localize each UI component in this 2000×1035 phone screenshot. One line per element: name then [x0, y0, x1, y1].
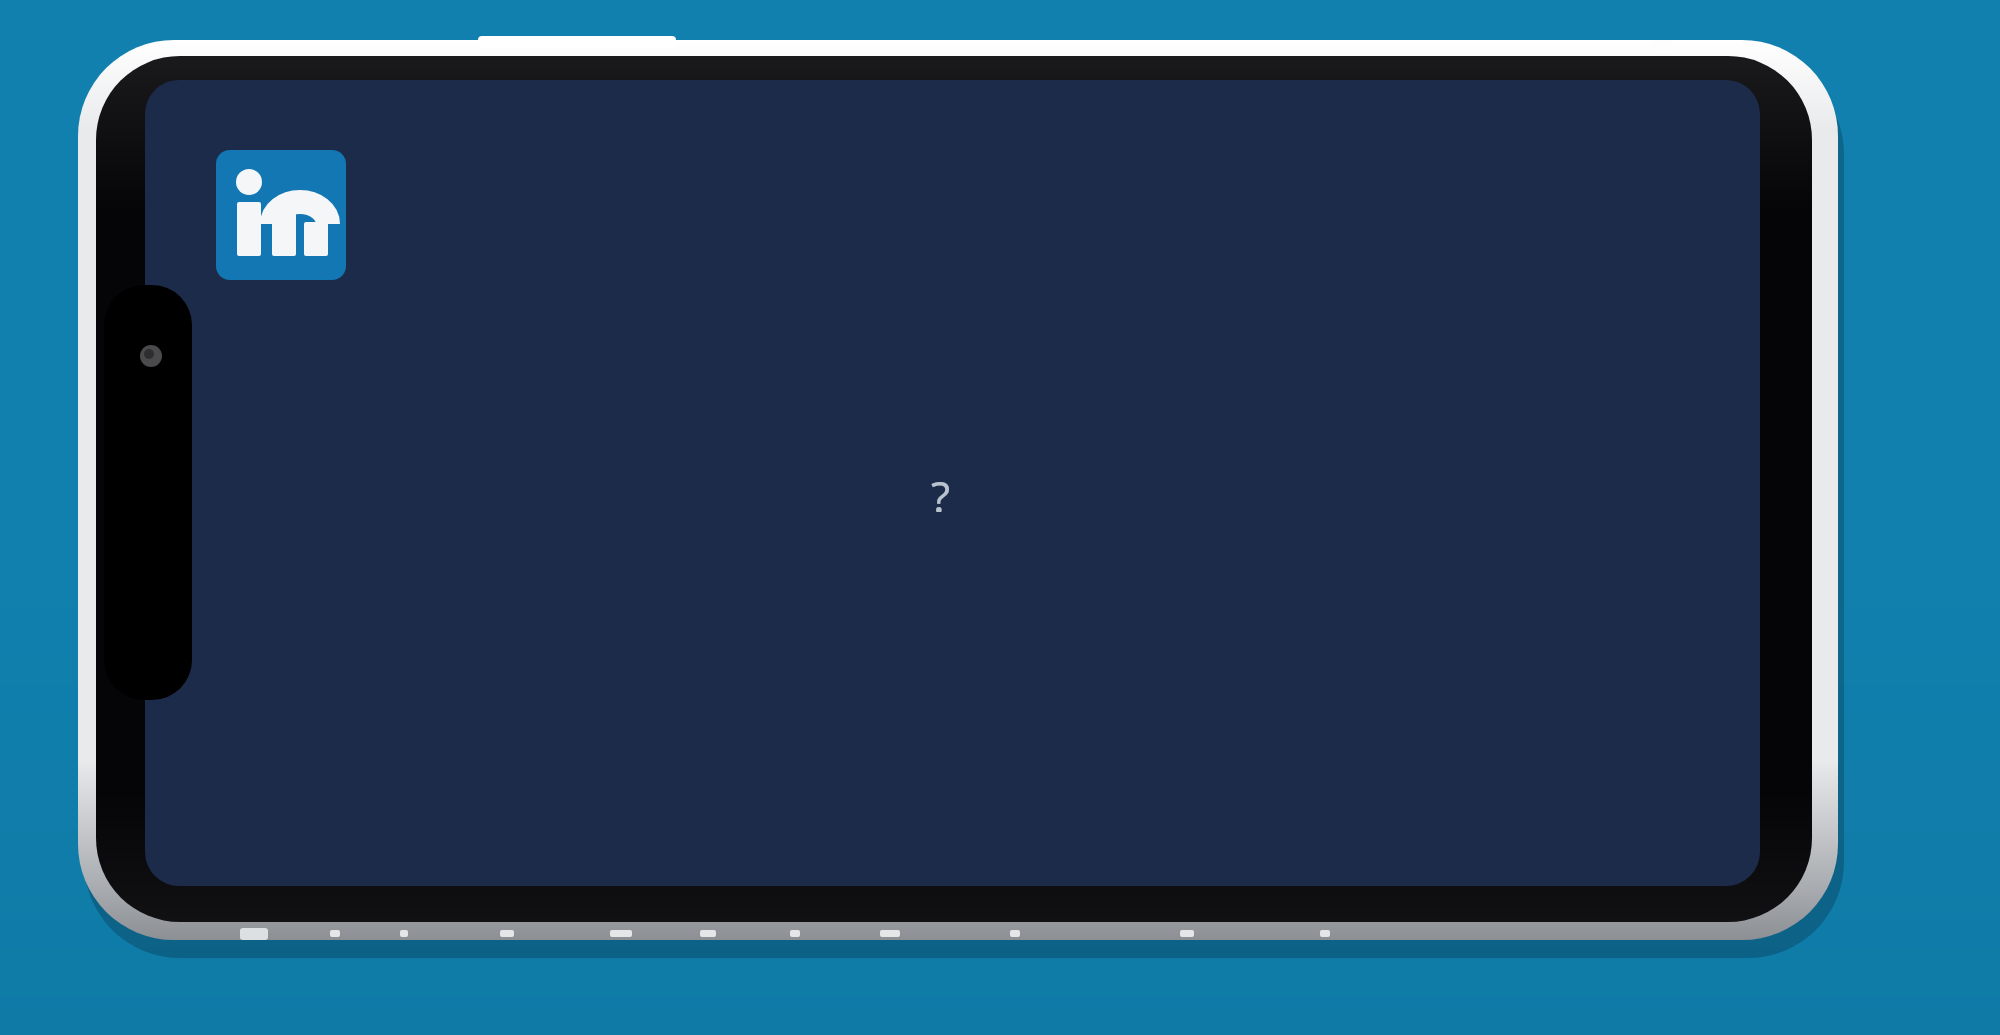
- button[interactable]: LinkedIn: [216, 150, 346, 280]
- staticText: ?: [931, 466, 951, 512]
